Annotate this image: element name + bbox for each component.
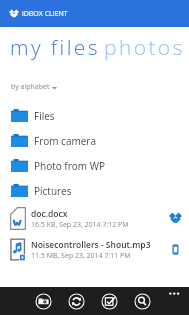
button[interactable]: Search xyxy=(134,293,151,310)
staticText: photos xyxy=(104,33,185,62)
button[interactable]: Camera xyxy=(35,293,52,310)
button[interactable]: iDBOX CLIENT xyxy=(0,0,189,27)
staticText: by alphabet xyxy=(11,82,50,92)
staticText: Noisecontrollers - Shout.mp3 xyxy=(31,239,151,251)
staticText: my files xyxy=(10,33,100,62)
button[interactable]: by alphabet xyxy=(11,82,57,92)
staticText: Files xyxy=(34,109,55,123)
button[interactable]: Sync xyxy=(68,293,85,310)
button[interactable]: Noisecontrollers - Shout.mp3 xyxy=(0,234,189,265)
staticText: iDBOX CLIENT xyxy=(22,9,68,19)
staticText: Photo from WP xyxy=(34,159,105,173)
button[interactable]: doc.docx xyxy=(0,203,189,234)
button[interactable]: Photo from WP xyxy=(0,153,189,178)
button[interactable]: Files xyxy=(0,103,189,128)
staticText: 11.5 MB, Sep 23, 2014 7:11 PM xyxy=(31,251,131,261)
staticText: 16.5 KB, Sep 23, 2014 7:12 PM xyxy=(31,220,129,230)
staticText: From camera xyxy=(34,134,96,148)
button[interactable]: Pictures xyxy=(0,178,189,203)
button[interactable]: Upload xyxy=(101,293,118,310)
staticText: doc.docx xyxy=(31,208,68,220)
staticText: Pictures xyxy=(34,184,72,198)
button[interactable]: From camera xyxy=(0,128,189,153)
button[interactable]: More options xyxy=(168,288,181,298)
